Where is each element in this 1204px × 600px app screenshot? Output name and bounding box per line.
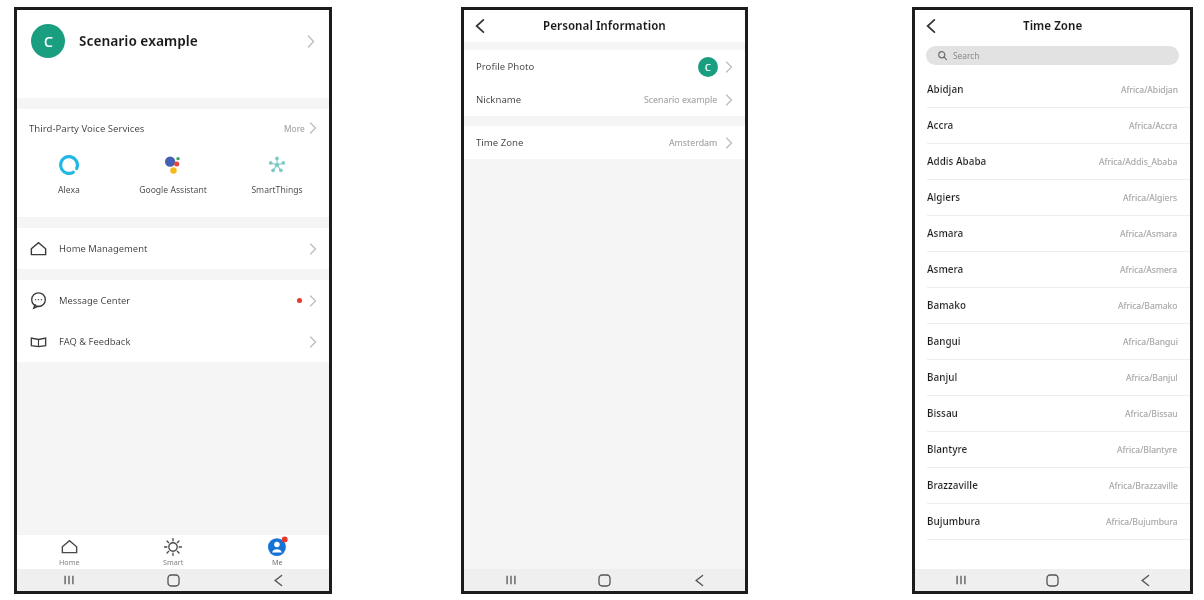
button[interactable]: FAQ & Feedback <box>17 321 329 362</box>
staticText: C <box>44 32 53 51</box>
button[interactable]: Profile Photo <box>464 50 745 83</box>
staticText: Blantyre <box>927 443 968 456</box>
button[interactable]: Abidjan <box>915 72 1190 108</box>
button[interactable]: Home Management <box>17 228 329 269</box>
staticText: Smart <box>163 557 184 567</box>
button[interactable]: Back <box>915 10 947 42</box>
staticText: Alexa <box>58 184 80 196</box>
staticText: Asmara <box>927 227 964 240</box>
staticText: Africa/Bujumbura <box>1106 516 1178 528</box>
staticText: Third-Party Voice Services <box>29 122 145 135</box>
staticText: Google Assistant <box>139 184 207 196</box>
staticText: Asmera <box>927 263 964 276</box>
button[interactable]: C <box>17 10 329 72</box>
button[interactable]: Nickname <box>464 83 745 116</box>
staticText: Bangui <box>927 335 961 348</box>
staticText: Addis Ababa <box>927 155 987 168</box>
staticText: Me <box>272 557 283 567</box>
button[interactable]: Time Zone <box>464 126 745 159</box>
staticText: Africa/Abidjan <box>1121 84 1178 96</box>
button[interactable]: Google Assistant <box>121 151 225 196</box>
staticText: Nickname <box>476 93 522 106</box>
staticText: Abidjan <box>927 83 964 96</box>
staticText: Scenario example <box>79 32 198 50</box>
button[interactable]: Back <box>464 10 496 42</box>
staticText: Africa/Brazzaville <box>1109 480 1178 492</box>
staticText: FAQ & Feedback <box>59 335 131 348</box>
staticText: Africa/Bangui <box>1123 336 1178 348</box>
button[interactable]: Brazzaville <box>915 468 1190 504</box>
button[interactable]: SmartThings <box>225 151 329 196</box>
button[interactable]: Bangui <box>915 324 1190 360</box>
staticText: Home <box>59 557 80 567</box>
staticText: Africa/Banjul <box>1126 372 1178 384</box>
button[interactable]: Home <box>17 535 121 569</box>
staticText: Personal Information <box>543 18 666 34</box>
button[interactable]: Asmera <box>915 252 1190 288</box>
staticText: Bissau <box>927 407 958 420</box>
staticText: More <box>284 123 305 134</box>
button[interactable]: More <box>284 121 317 135</box>
staticText: C <box>705 61 711 73</box>
staticText: Time Zone <box>476 136 524 149</box>
button[interactable]: Bissau <box>915 396 1190 432</box>
staticText: Africa/Addis_Ababa <box>1099 156 1178 168</box>
staticText: Africa/Asmara <box>1120 228 1178 240</box>
staticText: Algiers <box>927 191 961 204</box>
button[interactable]: Smart <box>121 535 225 569</box>
staticText: Africa/Algiers <box>1123 192 1178 204</box>
staticText: Brazzaville <box>927 479 978 492</box>
staticText: Bamako <box>927 299 967 312</box>
staticText: Africa/Blantyre <box>1117 444 1178 456</box>
button[interactable]: Message Center <box>17 280 329 321</box>
button[interactable]: Alexa <box>17 151 121 196</box>
staticText: SmartThings <box>251 184 303 196</box>
staticText: Time Zone <box>1023 18 1083 34</box>
button[interactable]: Bujumbura <box>915 504 1190 540</box>
staticText: Scenario example <box>644 94 718 106</box>
staticText: Profile Photo <box>476 60 535 73</box>
staticText: Africa/Asmera <box>1120 264 1178 276</box>
staticText: Home Management <box>59 242 148 255</box>
staticText: Bujumbura <box>927 515 981 528</box>
staticText: Message Center <box>59 294 131 307</box>
button[interactable]: Bamako <box>915 288 1190 324</box>
button[interactable]: Accra <box>915 108 1190 144</box>
button[interactable]: Search <box>926 46 1179 65</box>
staticText: Amsterdam <box>669 137 718 149</box>
button[interactable]: Me <box>225 535 329 569</box>
button[interactable]: Addis Ababa <box>915 144 1190 180</box>
staticText: Africa/Bissau <box>1125 408 1178 420</box>
staticText: Africa/Accra <box>1129 120 1178 132</box>
staticText: Accra <box>927 119 954 132</box>
button[interactable]: Blantyre <box>915 432 1190 468</box>
button[interactable]: Algiers <box>915 180 1190 216</box>
staticText: Banjul <box>927 371 958 384</box>
button[interactable]: Banjul <box>915 360 1190 396</box>
staticText: Search <box>953 50 980 61</box>
staticText: Africa/Bamako <box>1118 300 1178 312</box>
button[interactable]: Asmara <box>915 216 1190 252</box>
